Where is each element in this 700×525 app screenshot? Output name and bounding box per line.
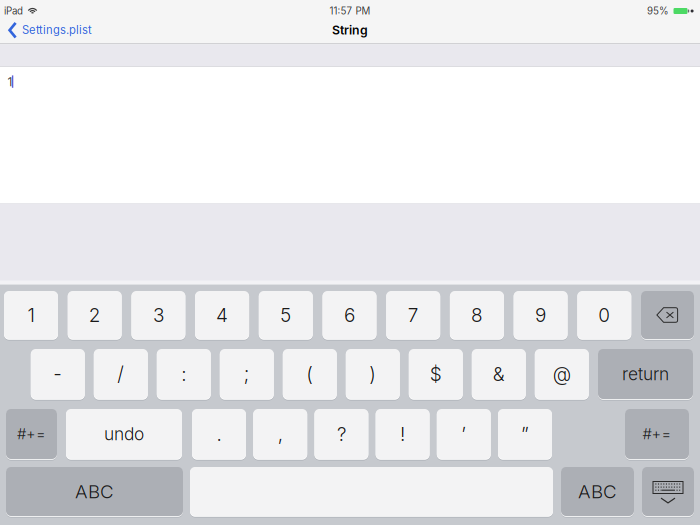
button[interactable]: ,	[253, 409, 307, 459]
staticText: return	[622, 363, 669, 384]
button[interactable]: 4	[195, 291, 249, 339]
button[interactable]: #+=	[6, 409, 57, 459]
staticText: 0	[598, 303, 610, 326]
button[interactable]: 1	[4, 291, 58, 339]
staticText: (	[306, 362, 313, 385]
staticText: )	[369, 362, 376, 385]
staticText: 9	[535, 303, 546, 326]
staticText: ?	[337, 422, 346, 445]
button[interactable]: 7	[386, 291, 440, 339]
staticText: &	[493, 362, 505, 385]
staticText: 2	[89, 303, 101, 326]
button[interactable]: (	[283, 349, 337, 399]
button[interactable]: Delete	[641, 291, 694, 339]
staticText: ABC	[578, 480, 617, 503]
staticText: $	[430, 362, 442, 385]
button[interactable]: Hide Keyboard	[642, 467, 694, 516]
staticText: 11:57 PM	[329, 5, 370, 17]
button[interactable]: ”	[498, 409, 552, 459]
staticText: Settings.plist	[22, 23, 92, 37]
button[interactable]: Settings.plist	[3, 17, 203, 43]
button[interactable]: 8	[450, 291, 504, 339]
staticText: undo	[104, 423, 144, 444]
staticText: -	[53, 362, 62, 385]
staticText: #+=	[17, 425, 46, 443]
button[interactable]: @	[535, 349, 589, 399]
button[interactable]: :	[157, 349, 211, 399]
button[interactable]: )	[346, 349, 400, 399]
button[interactable]: &	[472, 349, 526, 399]
staticText: !	[400, 422, 405, 445]
staticText: iPad	[4, 5, 23, 17]
button[interactable]: ’	[437, 409, 491, 459]
staticText: 6	[344, 303, 355, 326]
staticText: @	[553, 362, 571, 385]
staticText: 3	[153, 303, 164, 326]
staticText: ’	[461, 422, 466, 445]
button[interactable]: ABC	[561, 467, 634, 516]
button[interactable]: return	[598, 349, 693, 399]
button[interactable]: 6	[322, 291, 376, 339]
button[interactable]: 2	[68, 291, 122, 339]
staticText: 1	[7, 75, 12, 89]
staticText: 95%	[647, 5, 669, 17]
button[interactable]: 5	[259, 291, 313, 339]
staticText: ”	[521, 422, 529, 445]
staticText: 8	[471, 303, 483, 326]
button[interactable]: 0	[577, 291, 631, 339]
staticText: 4	[216, 303, 228, 326]
staticText: #+=	[642, 425, 671, 443]
staticText: 1	[27, 303, 34, 326]
button[interactable]: /	[94, 349, 148, 399]
staticText: ,	[278, 422, 283, 445]
staticText: 7	[408, 303, 419, 326]
staticText: :	[181, 362, 186, 385]
button[interactable]: $	[409, 349, 463, 399]
button[interactable]: 9	[514, 291, 568, 339]
staticText: String	[332, 23, 368, 37]
button[interactable]: #+=	[625, 409, 689, 459]
button[interactable]: ;	[220, 349, 274, 399]
staticText: 5	[280, 303, 291, 326]
button[interactable]: ABC	[6, 467, 183, 516]
staticText: .	[216, 422, 221, 445]
staticText: ;	[244, 362, 250, 385]
staticText: ABC	[75, 480, 114, 503]
staticText: /	[117, 362, 124, 385]
button[interactable]: undo	[66, 409, 182, 459]
button[interactable]: -	[31, 349, 85, 399]
button[interactable]: !	[376, 409, 430, 459]
button[interactable]: ?	[314, 409, 368, 459]
button[interactable]: .	[192, 409, 246, 459]
button[interactable]: 3	[131, 291, 185, 339]
